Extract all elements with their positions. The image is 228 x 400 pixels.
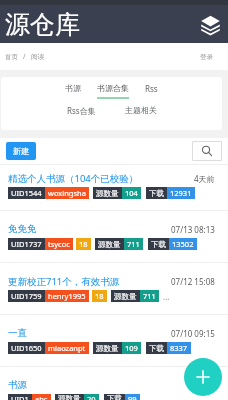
staticText: 下载 (149, 189, 164, 198)
button[interactable]: 主题相关 (117, 105, 165, 121)
button[interactable]: Rss合集 (59, 105, 104, 122)
staticText: 源数量 (98, 240, 121, 249)
staticText: 109 (125, 343, 138, 353)
button[interactable]: 精选个人书源（104个已校验） (0, 165, 228, 211)
staticText: 13502 (172, 239, 194, 249)
staticText: 18 (95, 291, 104, 301)
button[interactable]: Rss (137, 83, 166, 100)
staticText: 书源 (65, 83, 81, 93)
staticText: 精选个人书源（104个已校验） (8, 172, 153, 185)
staticText: 8337 (170, 343, 188, 353)
staticText: 104 (125, 188, 138, 198)
staticText: 下载 (107, 394, 122, 400)
staticText: 书源 (8, 379, 153, 391)
button[interactable]: 书源 (0, 367, 228, 400)
staticText: 免免免 (8, 223, 153, 235)
staticText: miaozanpt (48, 343, 86, 353)
button[interactable]: 登录 (200, 53, 213, 61)
staticText: 首页 (5, 53, 18, 61)
staticText: 4天前 (194, 173, 215, 184)
staticText: 07/12 15:08 (171, 276, 215, 287)
button[interactable]: 书源合集 (89, 83, 137, 99)
staticText: 07/10 (193, 380, 215, 391)
staticText: 更新校正711个，有效书源 (8, 275, 153, 288)
button[interactable]: Search (192, 141, 222, 161)
staticText: 主题相关 (125, 105, 157, 115)
button[interactable]: Add (184, 358, 222, 396)
staticText: UID1737 (11, 239, 42, 249)
staticText: 一直 (8, 327, 153, 339)
button[interactable]: 一直 (0, 315, 228, 367)
staticText: / (18, 52, 31, 61)
staticText: 阅读 (31, 53, 44, 61)
staticText: ... (163, 291, 170, 302)
staticText: 下载 (149, 344, 164, 353)
staticText: woxingsha (48, 188, 86, 198)
staticText: UID1650 (11, 343, 42, 353)
staticText: 新建 (13, 146, 29, 156)
button[interactable]: 书源 (57, 83, 89, 99)
button[interactable]: 新建 (6, 142, 36, 160)
button[interactable]: 更新校正711个，有效书源 (0, 263, 228, 315)
staticText: 源仓库 (5, 9, 80, 40)
staticText: 07/10 09:15 (171, 328, 215, 339)
button[interactable]: Layers (200, 14, 220, 34)
staticText: 下载 (151, 240, 166, 249)
staticText: UID1759 (11, 291, 42, 301)
staticText: henry1995 (48, 291, 86, 301)
staticText: Rss (145, 83, 158, 94)
staticText: 源数量 (58, 394, 81, 400)
staticText: 源数量 (114, 292, 137, 301)
staticText: 07/13 08:13 (171, 224, 215, 235)
staticText: Rss合集 (67, 105, 96, 116)
staticText: UID1 (11, 394, 29, 400)
staticText: 书源合集 (97, 83, 129, 93)
staticText: abc (35, 394, 48, 400)
staticText: 20 (87, 394, 96, 400)
staticText: 711 (127, 239, 140, 249)
staticText: 源数量 (96, 344, 119, 353)
staticText: 99 (128, 394, 137, 400)
staticText: 18 (79, 239, 88, 249)
staticText: tsycoc (48, 239, 70, 249)
staticText: 711 (143, 291, 156, 301)
staticText: 源数量 (96, 189, 119, 198)
staticText: 12931 (170, 188, 192, 198)
staticText: UID1544 (11, 188, 42, 198)
button[interactable]: 免免免 (0, 211, 228, 263)
